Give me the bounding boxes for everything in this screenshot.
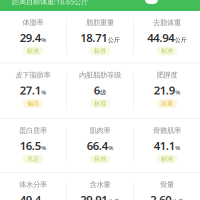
staticText: 标准 xyxy=(161,155,173,163)
staticText: 2.60 xyxy=(150,192,171,200)
staticText: 体脂率 xyxy=(22,18,43,27)
staticText: 29.91 xyxy=(80,192,107,200)
staticText: 标准 xyxy=(94,47,106,55)
staticText: 距离目标体重:18.65公斤 xyxy=(12,0,88,7)
staticText: 标准 xyxy=(94,155,106,163)
button[interactable]: 蛋白质率 xyxy=(0,119,66,172)
button[interactable]: 骨骼肌率 xyxy=(134,119,200,172)
staticText: 21.9 xyxy=(154,82,175,98)
staticText: 体水分率 xyxy=(19,180,47,189)
button[interactable]: 含水量 xyxy=(67,173,133,200)
staticText: 脂肪重量 xyxy=(86,18,114,27)
button[interactable]: 去脂体重 xyxy=(134,11,200,62)
staticText: 6 xyxy=(94,82,100,98)
staticText: 标准 xyxy=(27,47,39,55)
staticText: 41.1 xyxy=(154,138,175,153)
button[interactable]: 肌肉率 xyxy=(67,119,133,172)
staticText: 公斤 xyxy=(172,198,184,200)
button[interactable]: 体脂率 xyxy=(0,11,66,62)
button[interactable]: 骨量 xyxy=(134,173,200,200)
staticText: % xyxy=(108,143,113,152)
staticText: 66.4 xyxy=(87,138,108,153)
staticText: 标准 xyxy=(94,100,106,107)
staticText: 标准 xyxy=(161,47,173,55)
staticText: 充足 xyxy=(27,155,39,163)
staticText: 偏高 xyxy=(27,100,39,107)
staticText: 去脂体重 xyxy=(153,18,181,27)
staticText: 超重 xyxy=(161,100,173,107)
staticText: % xyxy=(41,88,46,96)
staticText: % xyxy=(41,143,46,152)
button[interactable]: 脂肪重量 xyxy=(67,11,133,62)
staticText: 皮下脂肪率 xyxy=(15,70,50,80)
button[interactable]: 内脏脂肪等级 xyxy=(67,63,133,118)
staticText: 骨骼肌率 xyxy=(153,126,181,135)
staticText: 49.4 xyxy=(20,192,41,200)
button[interactable]: 肥胖度 xyxy=(134,63,200,118)
staticText: 肥胖度 xyxy=(156,70,177,80)
staticText: % xyxy=(175,143,180,152)
staticText: 骨量 xyxy=(160,180,174,189)
staticText: % xyxy=(175,88,180,96)
staticText: 内脏脂肪等级 xyxy=(79,70,121,80)
staticText: 44.94 xyxy=(147,30,174,45)
staticText: 公斤 xyxy=(175,36,187,44)
staticText: 公斤 xyxy=(108,198,120,200)
button[interactable]: 体水分率 xyxy=(0,173,66,200)
staticText: 肌肉率 xyxy=(89,126,110,135)
staticText: 含水量 xyxy=(89,180,110,189)
staticText: 27.1 xyxy=(20,82,41,98)
staticText: 蛋白质率 xyxy=(19,126,47,135)
staticText: 16.5 xyxy=(20,138,41,153)
staticText: 公斤 xyxy=(108,36,120,44)
button[interactable]: 皮下脂肪率 xyxy=(0,63,66,118)
staticText: 29.4 xyxy=(20,30,41,45)
staticText: % xyxy=(41,35,46,44)
staticText: 级 xyxy=(100,88,106,96)
staticText: 18.71 xyxy=(80,30,107,45)
